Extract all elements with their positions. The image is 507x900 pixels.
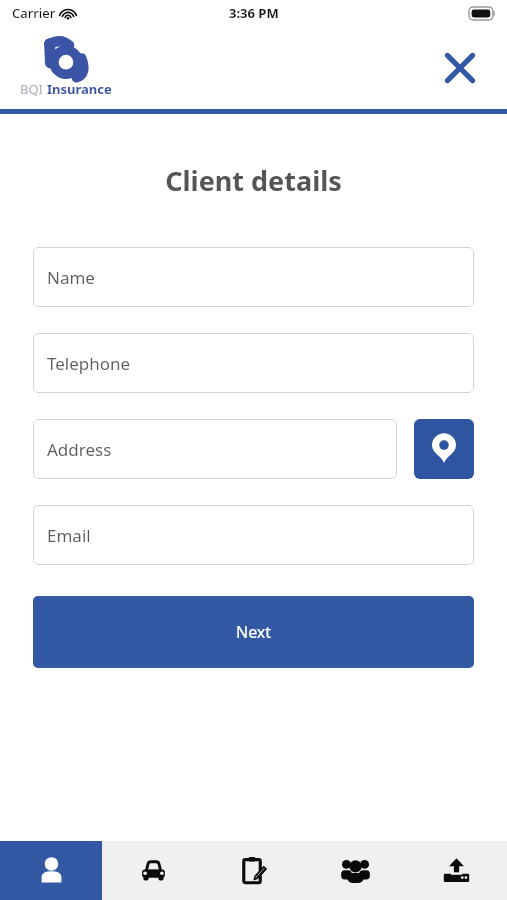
button[interactable]: Next [33, 596, 474, 668]
button[interactable]: Witnesses [305, 841, 406, 900]
button[interactable]: Telephone [33, 333, 474, 393]
staticText: Carrier [12, 4, 56, 22]
staticText: BQI [20, 80, 47, 98]
button[interactable]: Vehicle [102, 841, 204, 900]
button[interactable]: Client [0, 841, 102, 900]
button[interactable]: Name [33, 247, 474, 307]
staticText: Address [47, 438, 112, 461]
button[interactable]: Pick location [414, 419, 474, 479]
button[interactable]: Address [33, 419, 397, 479]
button[interactable]: Email [33, 505, 474, 565]
staticText: Telephone [47, 352, 131, 375]
staticText: 3:36 PM [229, 4, 279, 22]
button[interactable]: Report [204, 841, 305, 900]
button[interactable]: Close [433, 41, 487, 95]
staticText: Insurance [47, 80, 112, 98]
staticText: Name [47, 266, 95, 289]
staticText: Email [47, 524, 91, 547]
button[interactable]: Upload [406, 841, 507, 900]
staticText: Client details [0, 162, 507, 199]
staticText: Next [236, 621, 272, 643]
